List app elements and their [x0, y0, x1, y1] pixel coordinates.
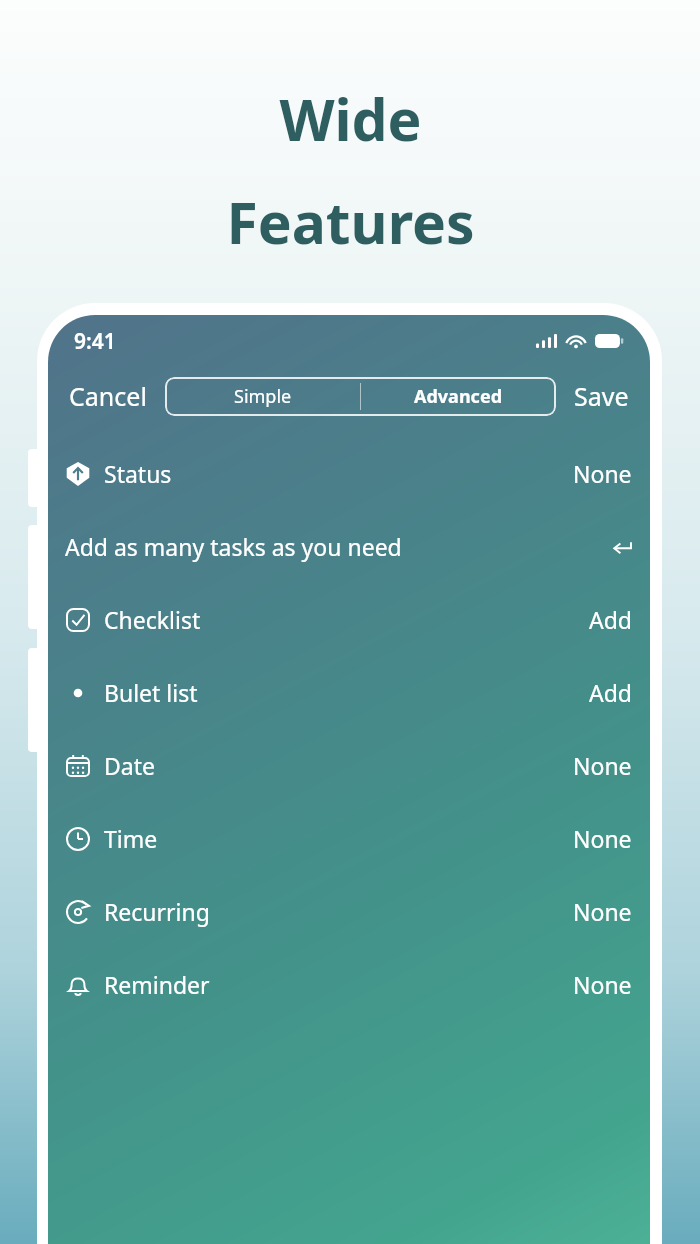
staticText: None	[573, 896, 632, 927]
staticText: Features	[226, 183, 475, 261]
button[interactable]: Date	[48, 729, 650, 802]
staticText: Reminder	[104, 969, 210, 1000]
staticText: Add as many tasks as you need	[65, 531, 402, 562]
staticText: Status	[104, 458, 172, 489]
staticText: None	[573, 969, 632, 1000]
staticText: None	[573, 750, 632, 781]
other: Return	[612, 537, 632, 557]
button[interactable]: Bulet list	[48, 656, 650, 729]
staticText: None	[573, 458, 632, 489]
staticText: Simple	[234, 384, 292, 409]
button[interactable]: Add as many tasks as you need	[48, 510, 650, 583]
staticText: Add	[589, 604, 632, 635]
staticText: Advanced	[414, 384, 503, 409]
button[interactable]: Reminder	[48, 948, 650, 1021]
staticText: Recurring	[104, 896, 210, 927]
button[interactable]: Time	[48, 802, 650, 875]
button[interactable]: Checklist	[48, 583, 650, 656]
staticText: None	[573, 823, 632, 854]
button[interactable]: Recurring	[48, 875, 650, 948]
staticText: 9:41	[74, 327, 116, 356]
staticText: Date	[104, 750, 155, 781]
staticText: Wide	[279, 80, 422, 158]
button[interactable]: Status	[48, 437, 650, 510]
staticText: Save	[574, 379, 629, 413]
button[interactable]: Simple	[165, 377, 360, 416]
button[interactable]: Cancel	[65, 372, 151, 420]
button[interactable]: Save	[570, 372, 633, 420]
staticText: Time	[104, 823, 158, 854]
staticText: Bulet list	[104, 677, 198, 708]
button[interactable]: Advanced	[361, 377, 556, 416]
staticText: Cancel	[69, 379, 147, 413]
staticText: Checklist	[104, 604, 201, 635]
staticText: Add	[589, 677, 632, 708]
